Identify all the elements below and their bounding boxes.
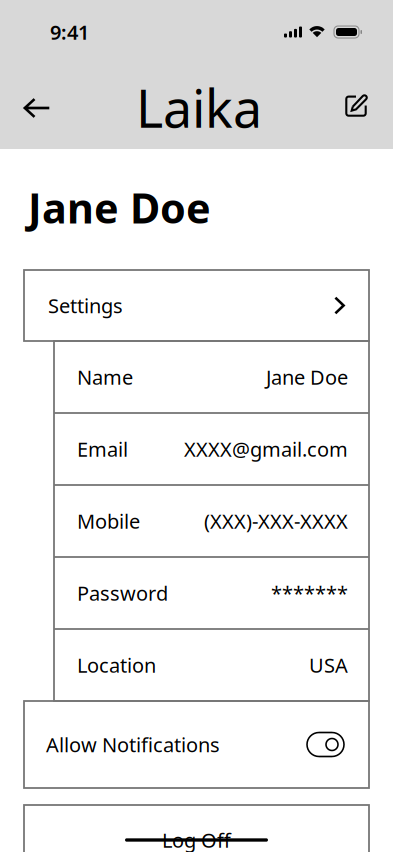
staticText: Password [77, 580, 168, 606]
button[interactable]: Allow Notifications [24, 701, 369, 788]
staticText: XXXX@gmail.com [184, 436, 348, 462]
staticText: Location [77, 652, 156, 678]
staticText: Jane Doe [266, 364, 348, 390]
staticText: 9:41 [50, 19, 89, 45]
staticText: Email [77, 436, 128, 462]
staticText: Mobile [77, 508, 140, 534]
staticText: Jane Doe [28, 180, 211, 235]
staticText: Log Off [162, 827, 231, 852]
staticText: ******* [271, 580, 348, 606]
button[interactable]: Edit [335, 84, 379, 128]
staticText: USA [309, 652, 348, 678]
staticText: Settings [48, 292, 123, 319]
staticText: Allow Notifications [46, 731, 220, 758]
button[interactable]: Back [13, 86, 61, 130]
staticText: Name [77, 364, 133, 390]
staticText: (XXX)-XXX-XXXX [204, 508, 348, 534]
button[interactable]: Log Off [24, 805, 369, 852]
staticText: Laika [136, 73, 262, 142]
button[interactable]: Settings [24, 270, 369, 341]
